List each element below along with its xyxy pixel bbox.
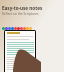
staticText: Easy-to-use notes: [2, 5, 43, 11]
staticText: Reflect on the Scriptures: [2, 12, 39, 16]
